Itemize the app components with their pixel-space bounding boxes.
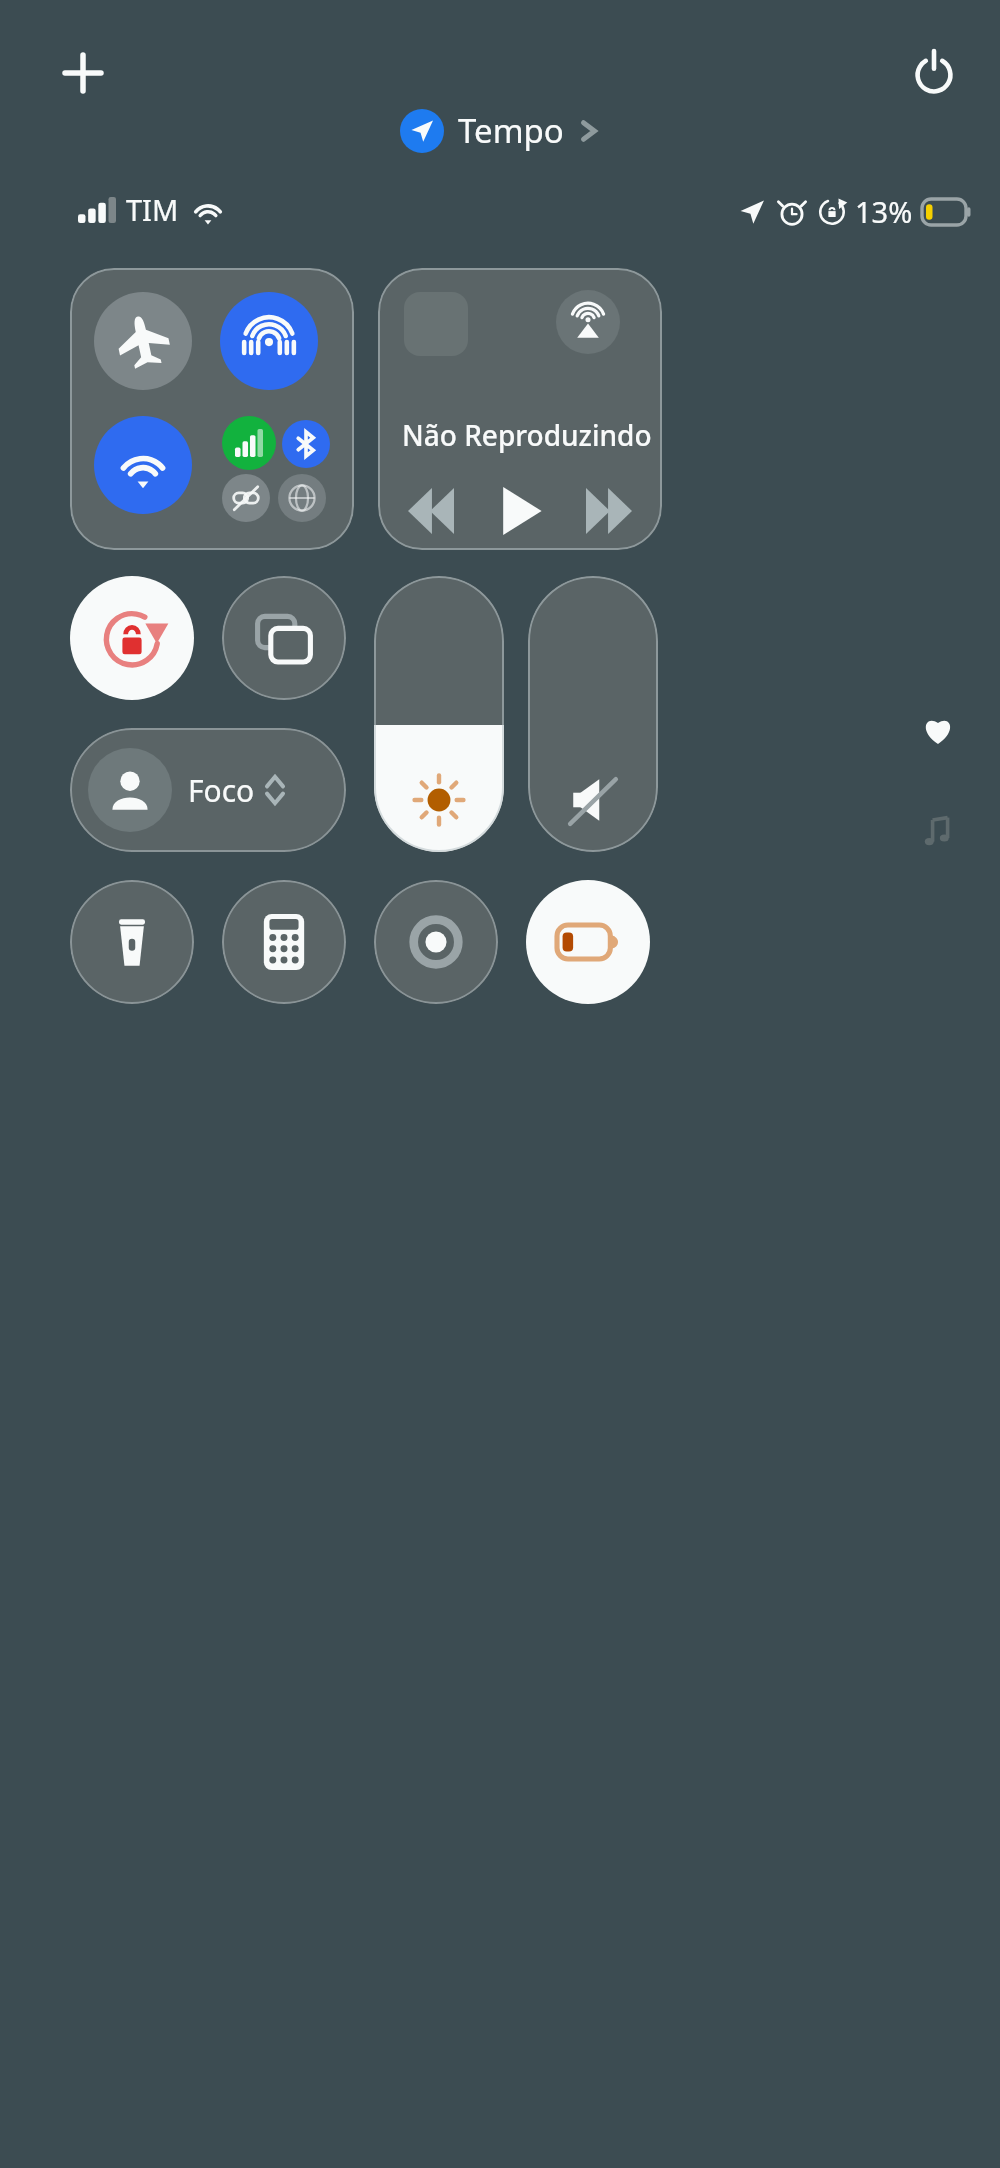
- staticText: Não Reproduzindo: [402, 416, 662, 454]
- staticText: Foco: [188, 770, 255, 811]
- staticText: 13%: [855, 192, 913, 231]
- button[interactable]: Calculator: [222, 880, 346, 1004]
- button[interactable]: Bluetooth: [282, 420, 330, 468]
- button[interactable]: AirDrop: [220, 292, 318, 390]
- button[interactable]: Foco: [70, 728, 346, 852]
- button[interactable]: Tempo: [400, 108, 600, 153]
- button[interactable]: Screen Mirroring: [222, 576, 346, 700]
- button[interactable]: Volume: [528, 576, 658, 852]
- staticText: Tempo: [458, 108, 564, 153]
- button[interactable]: Airplane mode: [94, 292, 192, 390]
- button[interactable]: Wi-Fi: [94, 416, 192, 514]
- button[interactable]: Favorite: [916, 708, 960, 752]
- button[interactable]: VPN: [222, 474, 270, 522]
- button[interactable]: Rotation lock: [70, 576, 194, 700]
- button[interactable]: AirPlay: [556, 290, 620, 354]
- button[interactable]: Low Power Mode: [526, 880, 650, 1004]
- button[interactable]: Internet: [278, 474, 326, 522]
- button[interactable]: Flashlight: [70, 880, 194, 1004]
- button[interactable]: Power: [898, 36, 970, 108]
- button[interactable]: Play: [485, 476, 555, 546]
- button[interactable]: Add control: [48, 38, 118, 108]
- button[interactable]: Brightness: [374, 576, 504, 852]
- button[interactable]: Cellular data: [222, 416, 276, 470]
- button[interactable]: Previous: [400, 480, 462, 542]
- staticText: TIM: [126, 190, 179, 229]
- button[interactable]: Next: [578, 480, 640, 542]
- button[interactable]: Music: [916, 810, 960, 854]
- button[interactable]: AirPlay: [378, 268, 662, 550]
- button[interactable]: Camera: [374, 880, 498, 1004]
